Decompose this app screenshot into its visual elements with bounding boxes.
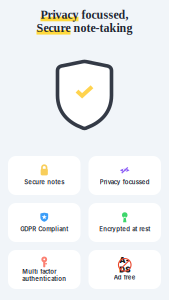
button[interactable]: ADS — [88, 250, 161, 289]
staticText: Encrypted at rest — [99, 226, 150, 233]
staticText: Privacy focussed — [100, 179, 150, 186]
staticText: GDPR Compliant — [20, 226, 68, 233]
staticText: ADS — [119, 255, 130, 275]
staticText: Privacy — [40, 8, 78, 21]
staticText: Secure notes — [24, 179, 64, 186]
button[interactable]: Multi factor authentication — [8, 250, 80, 289]
staticText: note-taking — [70, 21, 132, 35]
button[interactable]: Encrypted at rest — [88, 203, 161, 242]
staticText: Secure — [36, 21, 70, 35]
button[interactable]: GDPR Compliant — [8, 203, 80, 242]
staticText: Multi factor authentication — [22, 268, 66, 282]
button[interactable]: Secure notes — [8, 156, 80, 195]
staticText: Ad free — [114, 274, 136, 281]
staticText: focussed, — [78, 8, 128, 21]
button[interactable]: Privacy focussed — [88, 156, 161, 195]
